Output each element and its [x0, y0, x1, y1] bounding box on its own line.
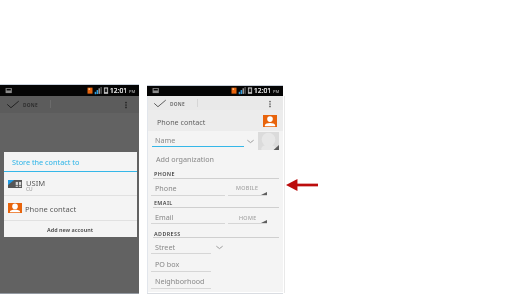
button[interactable]: Phone contact — [4, 196, 137, 221]
button[interactable]: Add contact photo — [258, 132, 279, 150]
staticText: Email — [155, 212, 174, 222]
staticText: 12:01 — [254, 86, 272, 95]
button[interactable]: Email — [151, 210, 225, 225]
button[interactable]: USIM — [4, 173, 137, 195]
button[interactable]: Phone — [151, 181, 225, 197]
staticText: HOME — [239, 214, 257, 221]
staticText: EMAIL — [154, 199, 173, 206]
staticText: Name — [155, 135, 176, 145]
staticText: PM — [273, 89, 280, 95]
button[interactable]: More options — [121, 99, 131, 111]
staticText: DONE — [23, 102, 38, 109]
staticText: 12:01 — [110, 86, 128, 95]
staticText: DONE — [170, 101, 185, 108]
button[interactable]: Neighborhood — [151, 274, 211, 290]
staticText: Phone contact — [25, 204, 77, 214]
button[interactable]: Add organization — [152, 153, 222, 164]
button[interactable]: More options — [265, 98, 275, 110]
other: Pointer arrow — [286, 179, 318, 191]
staticText: CU — [26, 186, 33, 193]
staticText: PM — [129, 89, 136, 95]
staticText: USIM — [26, 178, 46, 188]
button[interactable]: Phone contact — [147, 110, 283, 131]
staticText: Store the contact to — [12, 157, 80, 167]
button[interactable]: Name — [152, 134, 244, 147]
staticText: Street — [155, 242, 176, 252]
staticText: MOBILE — [236, 184, 259, 191]
button[interactable]: DONE — [4, 96, 44, 113]
staticText: Phone contact — [157, 117, 206, 127]
staticText: Add organization — [156, 154, 214, 164]
button[interactable]: HOME — [228, 212, 267, 226]
button[interactable]: Add new account — [4, 221, 137, 237]
staticText: PHONE — [154, 170, 175, 177]
button[interactable]: DONE — [151, 96, 191, 111]
button[interactable]: MOBILE — [228, 182, 267, 197]
staticText: Add new account — [47, 226, 94, 233]
button[interactable]: Street — [151, 240, 211, 255]
staticText: PO box — [155, 259, 180, 269]
button[interactable]: PO box — [151, 257, 211, 273]
staticText: Phone — [155, 183, 177, 193]
staticText: ADDRESS — [154, 230, 181, 237]
staticText: Neighborhood — [155, 276, 205, 286]
